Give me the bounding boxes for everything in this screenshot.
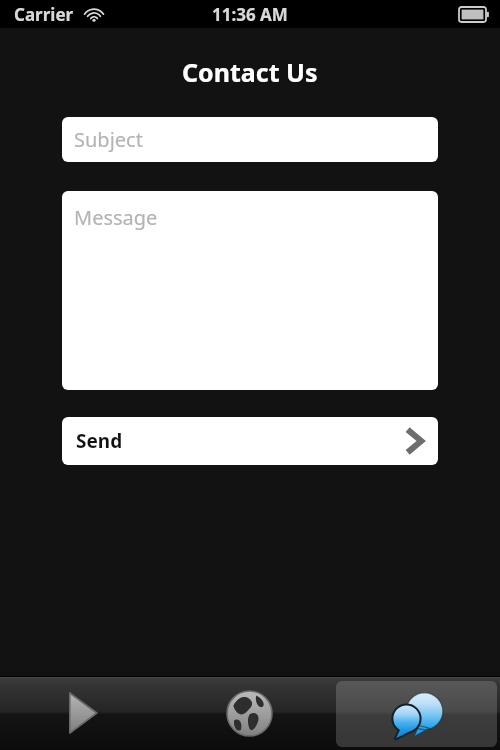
staticText: 11:36 AM [212,3,288,26]
button[interactable]: Contact Us [336,681,497,747]
staticText: Message [74,204,158,231]
staticText: Carrier [14,3,74,26]
button[interactable]: Web [166,676,333,750]
button[interactable]: Subject [62,117,438,162]
button[interactable]: Play [0,676,166,750]
staticText: Subject [74,126,143,153]
button[interactable]: Message [62,191,438,390]
staticText: Send [76,428,123,454]
staticText: Contact Us [182,55,318,89]
button[interactable]: Send [62,417,438,465]
